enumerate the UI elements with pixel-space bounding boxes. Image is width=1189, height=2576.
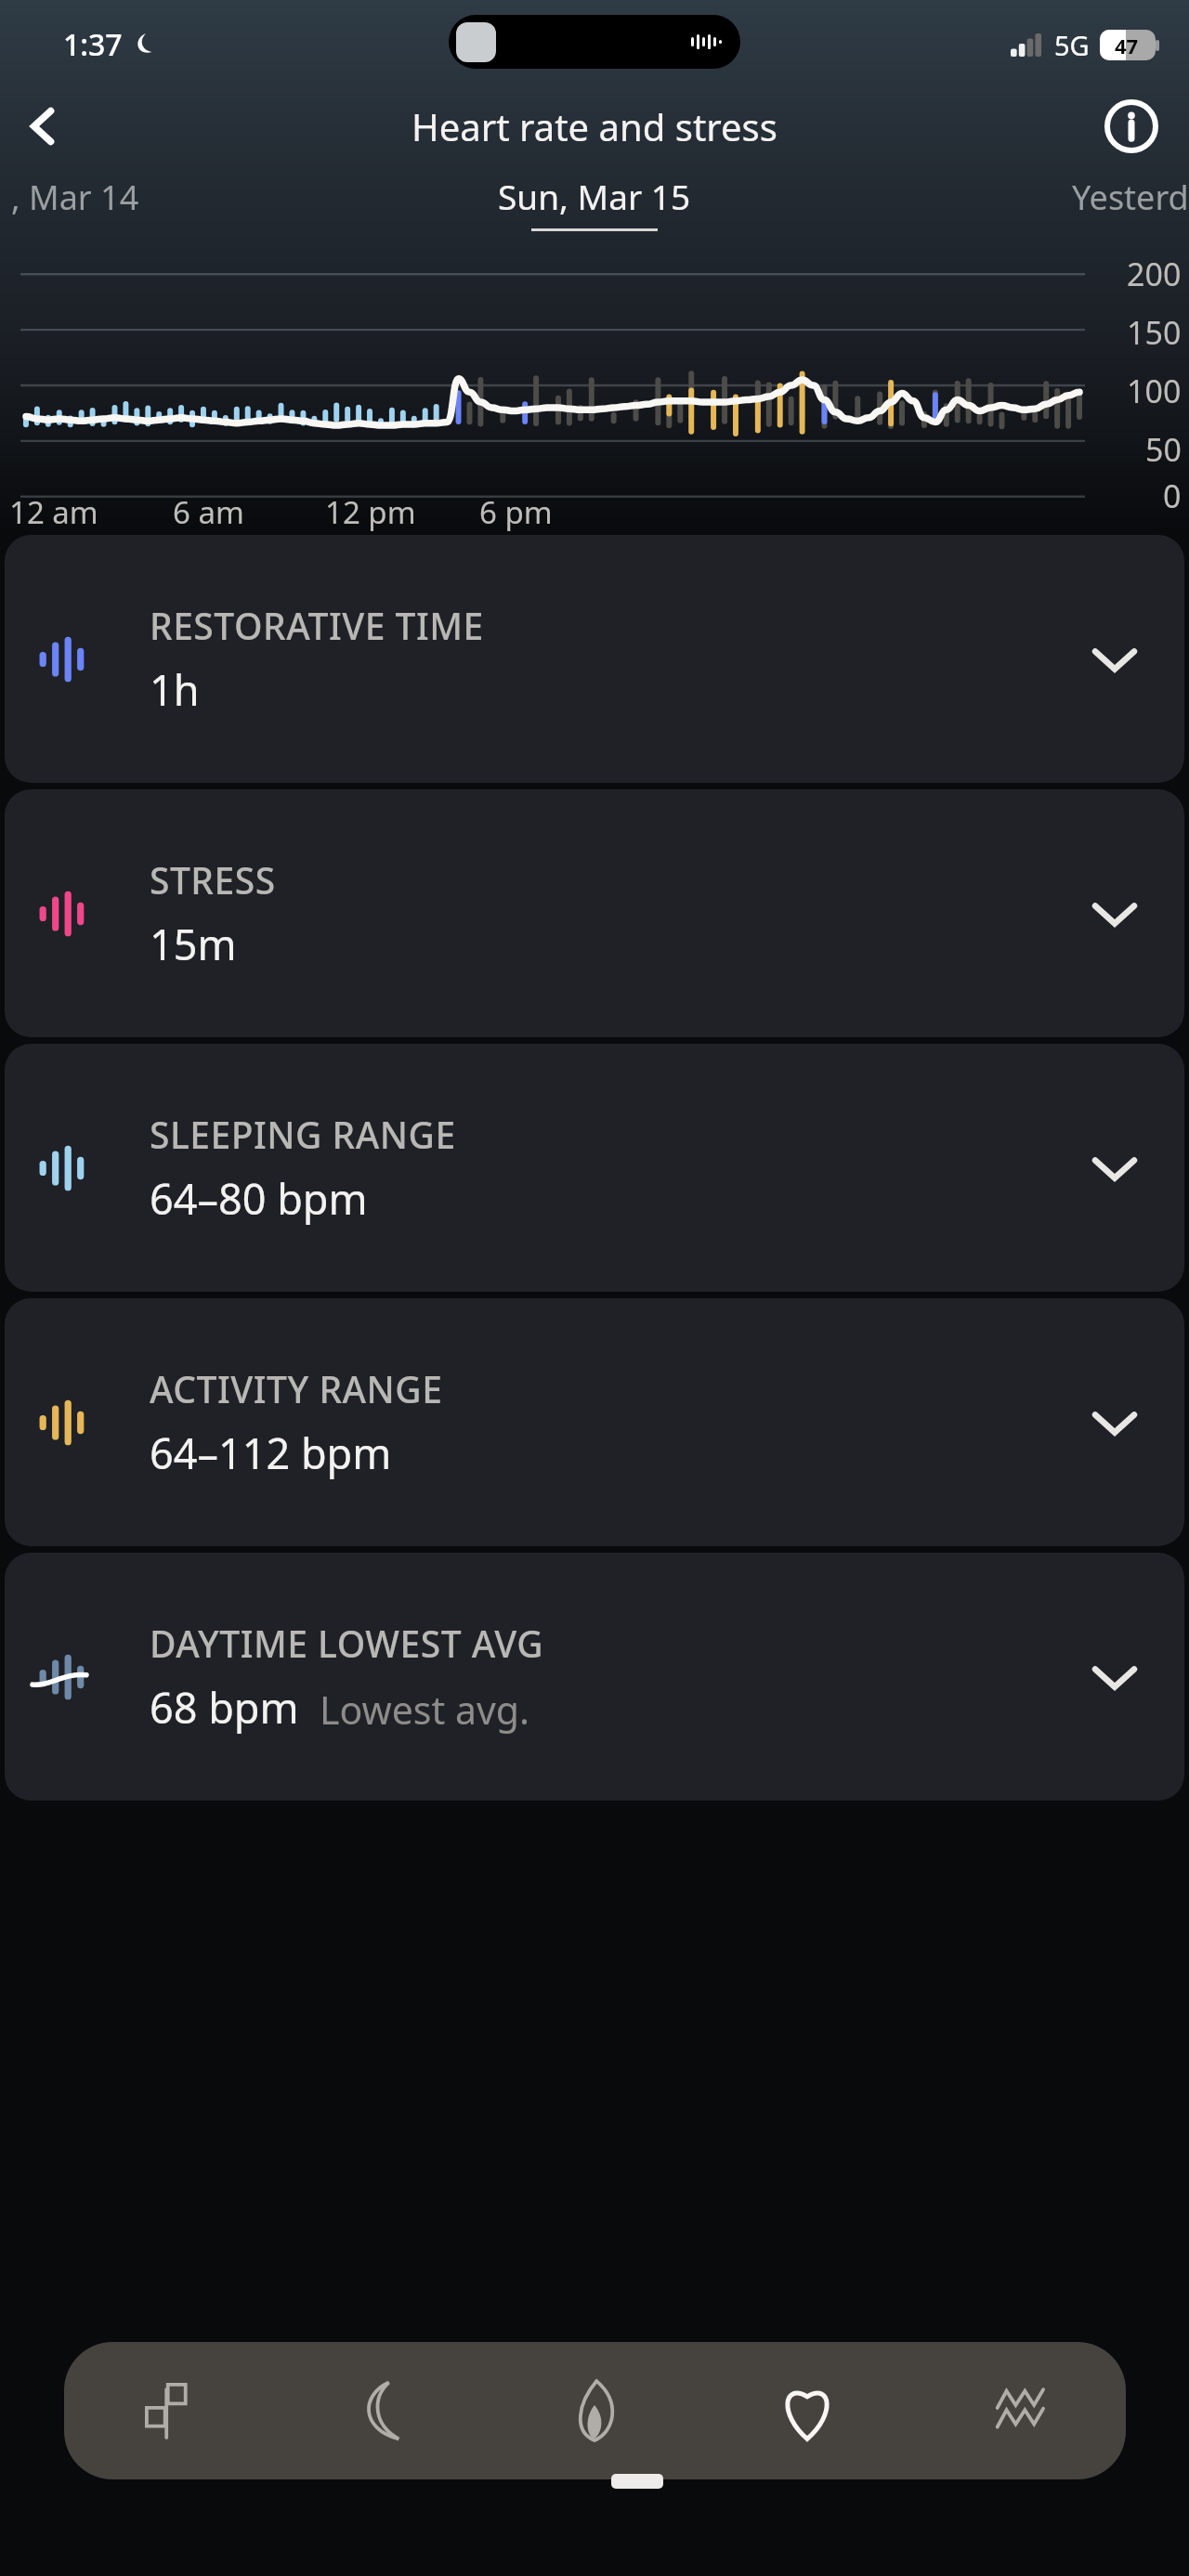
staticText: 5G [1054,27,1090,63]
staticText: STRESS [150,855,276,904]
staticText: RESTORATIVE TIME [150,601,484,650]
button[interactable]: SLEEPING RANGE [5,1044,1184,1292]
staticText: DAYTIME LOWEST AVG [150,1619,544,1668]
button[interactable]: , Mar 14 [11,175,139,220]
staticText: 200 [1127,253,1182,295]
staticText: SLEEPING RANGE [150,1110,456,1159]
button[interactable]: Heart rate [700,2342,913,2479]
button[interactable]: Trends [913,2342,1126,2479]
staticText: 15m [150,916,237,972]
button[interactable]: Info [1098,93,1165,160]
staticText: Lowest avg. [320,1684,529,1736]
button[interactable]: Energy [488,2342,700,2479]
staticText: 12 am [9,491,98,533]
button[interactable]: STRESS [5,789,1184,1037]
button[interactable]: RESTORATIVE TIME [5,535,1184,783]
staticText: 1h [150,661,200,718]
staticText: Heart rate and stress [412,101,777,151]
staticText: 100 [1127,370,1182,412]
staticText: 1:37 [63,24,123,65]
staticText: 12 pm [325,491,416,533]
button[interactable]: ACTIVITY RANGE [5,1298,1184,1546]
staticText: 150 [1127,311,1182,354]
staticText: 6 pm [479,491,553,533]
button[interactable]: Back [9,93,76,160]
button[interactable]: Activity [64,2342,276,2479]
button[interactable]: Sleep [276,2342,488,2479]
staticText: 47 [1115,32,1139,59]
button[interactable]: Sun, Mar 15 [498,173,691,219]
staticText: 0 [1163,475,1182,517]
staticText: 6 am [173,491,244,533]
staticText: 68 bpm [150,1679,299,1736]
staticText: ACTIVITY RANGE [150,1364,443,1413]
staticText: 50 [1145,428,1182,471]
button[interactable]: Yesterd [1072,175,1189,220]
staticText: 64–112 bpm [150,1425,392,1481]
button[interactable]: DAYTIME LOWEST AVG [5,1553,1184,1801]
staticText: 64–80 bpm [150,1170,368,1227]
